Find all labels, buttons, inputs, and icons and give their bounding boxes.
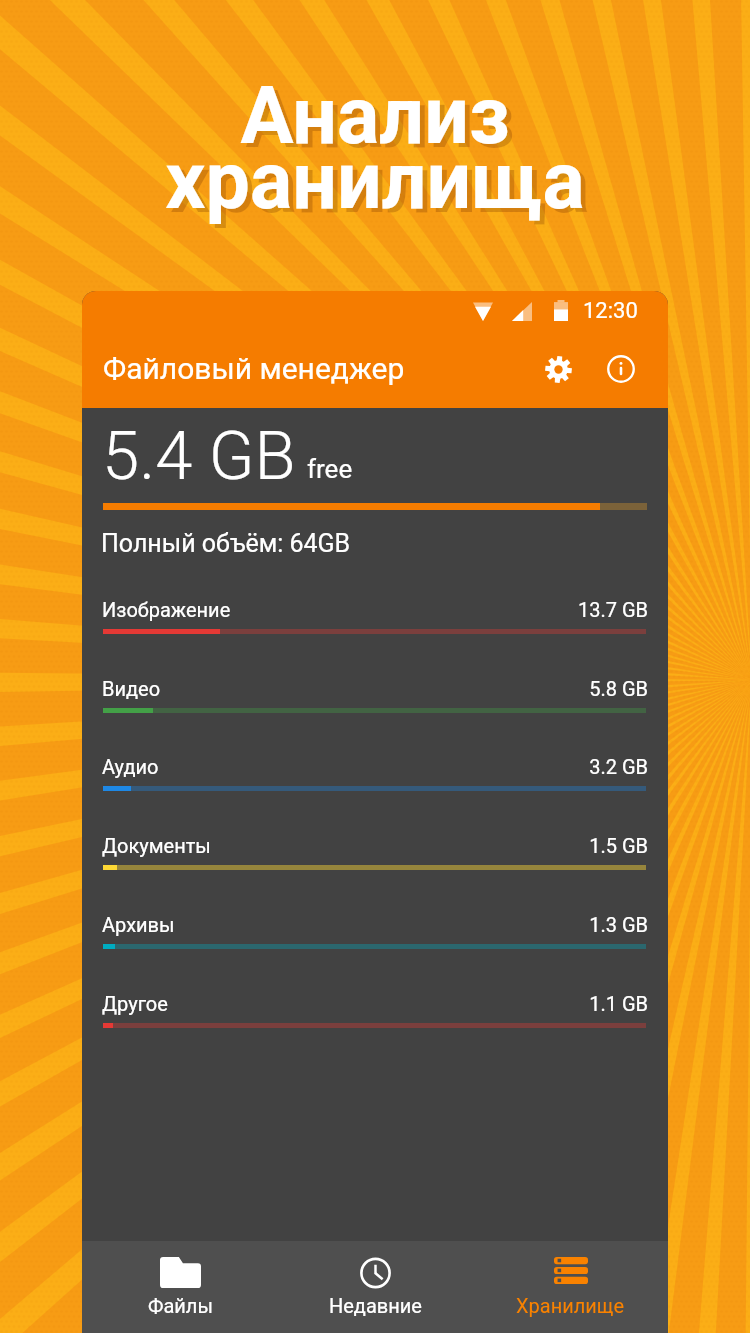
button[interactable]: Документы — [82, 824, 668, 902]
button[interactable]: Архивы — [82, 903, 668, 981]
staticText: Анализ хранилища — [0, 70, 750, 228]
staticText: 1.5 GB — [82, 834, 648, 857]
staticText: Хранилище — [516, 1294, 625, 1317]
staticText: Файлы — [148, 1294, 213, 1317]
button[interactable]: Аудио — [82, 745, 668, 823]
staticText: Изображение — [102, 598, 231, 621]
staticText: 5.8 GB — [82, 677, 648, 700]
staticText: Файловый менеджер — [103, 351, 405, 386]
button[interactable]: Хранилище — [473, 1241, 668, 1333]
button[interactable]: Видео — [82, 667, 668, 745]
staticText: 1.3 GB — [82, 913, 648, 936]
staticText: Недавние — [329, 1294, 422, 1317]
staticText: Другое — [102, 992, 168, 1015]
staticText: Аудио — [102, 755, 159, 778]
button[interactable]: Settings — [531, 342, 585, 396]
staticText: Архивы — [102, 913, 175, 936]
staticText: Анализ хранилища — [5, 74, 750, 232]
button[interactable]: Файлы — [82, 1241, 278, 1333]
staticText: 13.7 GB — [82, 598, 648, 621]
staticText: free — [307, 454, 353, 484]
staticText: 1.1 GB — [82, 992, 648, 1015]
staticText: 5.4 GB — [102, 417, 296, 496]
button[interactable]: Info — [594, 342, 648, 396]
staticText: Видео — [102, 677, 161, 700]
staticText: 3.2 GB — [82, 755, 648, 778]
staticText: 12:30 — [583, 298, 638, 324]
button[interactable]: Недавние — [278, 1241, 473, 1333]
staticText: Полный объём: 64GB — [101, 529, 351, 558]
button[interactable]: Изображение — [82, 588, 668, 666]
staticText: Документы — [102, 834, 211, 857]
button[interactable]: Другое — [82, 982, 668, 1060]
